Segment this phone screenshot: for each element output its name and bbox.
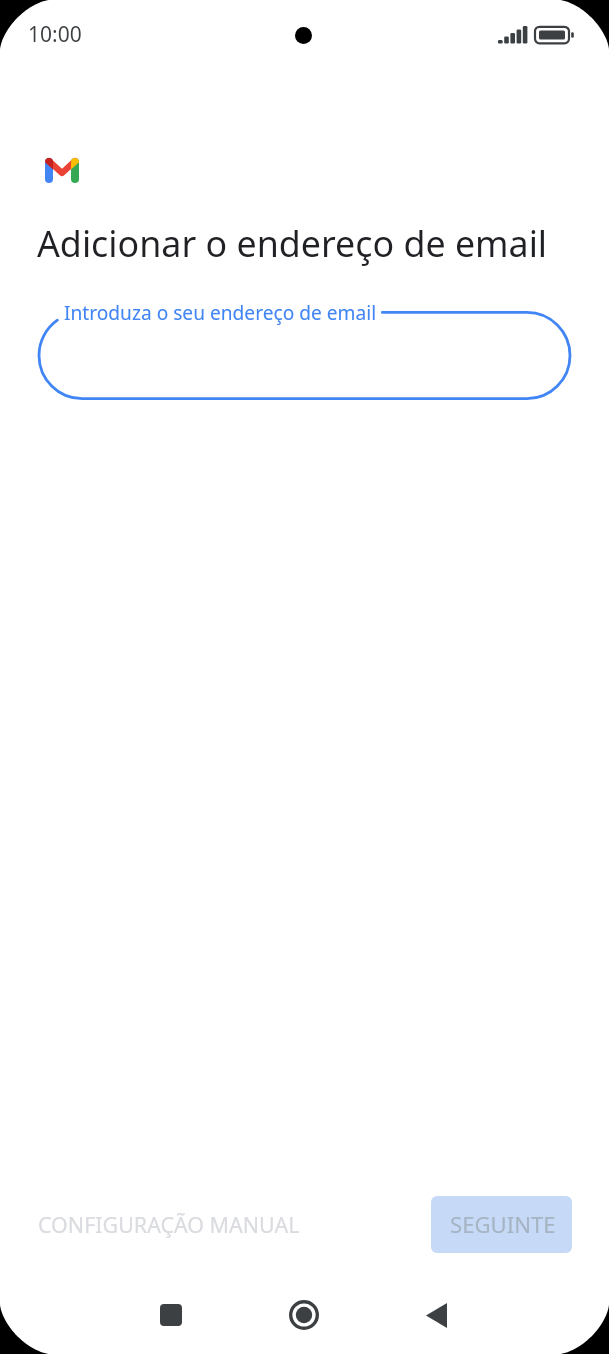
button[interactable]: CONFIGURAÇÃO MANUAL — [22, 1198, 316, 1251]
staticText: Adicionar o endereço de email — [37, 219, 548, 268]
button[interactable]: SEGUINTE — [431, 1196, 572, 1253]
staticText: Introduza o seu endereço de email — [64, 300, 377, 326]
staticText: CONFIGURAÇÃO MANUAL — [38, 1210, 300, 1239]
button[interactable]: Recent apps — [131, 1275, 211, 1354]
button[interactable]: Back — [396, 1275, 476, 1354]
staticText: 10:00 — [28, 20, 82, 49]
staticText: SEGUINTE — [450, 1209, 556, 1239]
button[interactable]: Introduza o seu endereço de email — [39, 311, 570, 400]
button[interactable]: Home — [264, 1275, 344, 1354]
